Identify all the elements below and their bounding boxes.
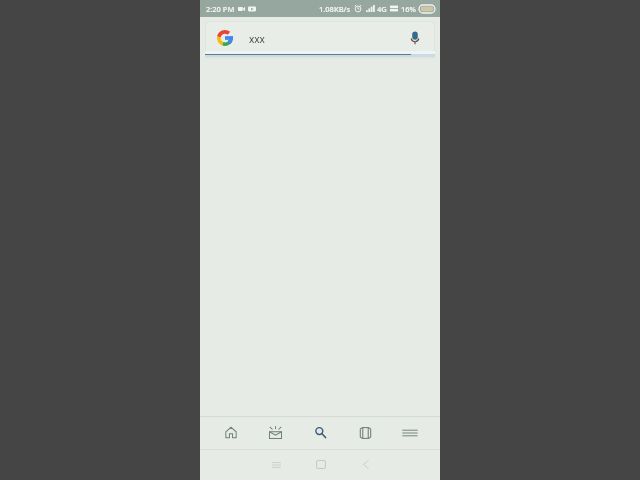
staticText: 2:20 PM xyxy=(206,4,235,14)
button[interactable]: Voice search xyxy=(405,28,425,48)
button[interactable]: Tabs xyxy=(343,416,388,449)
button[interactable]: Back xyxy=(348,449,384,480)
button[interactable]: Menu xyxy=(388,416,432,449)
staticText: xxx xyxy=(249,32,265,46)
button[interactable]: Recents xyxy=(258,449,294,480)
staticText: 16% xyxy=(401,4,416,14)
button[interactable]: Home xyxy=(303,449,339,480)
staticText: 4G xyxy=(377,4,387,14)
button[interactable]: New tab xyxy=(253,416,298,449)
button[interactable]: xxx xyxy=(206,22,434,53)
staticText: 1.08KB/s xyxy=(319,4,351,14)
button[interactable]: Search xyxy=(298,416,343,449)
button[interactable]: Home xyxy=(208,416,253,449)
